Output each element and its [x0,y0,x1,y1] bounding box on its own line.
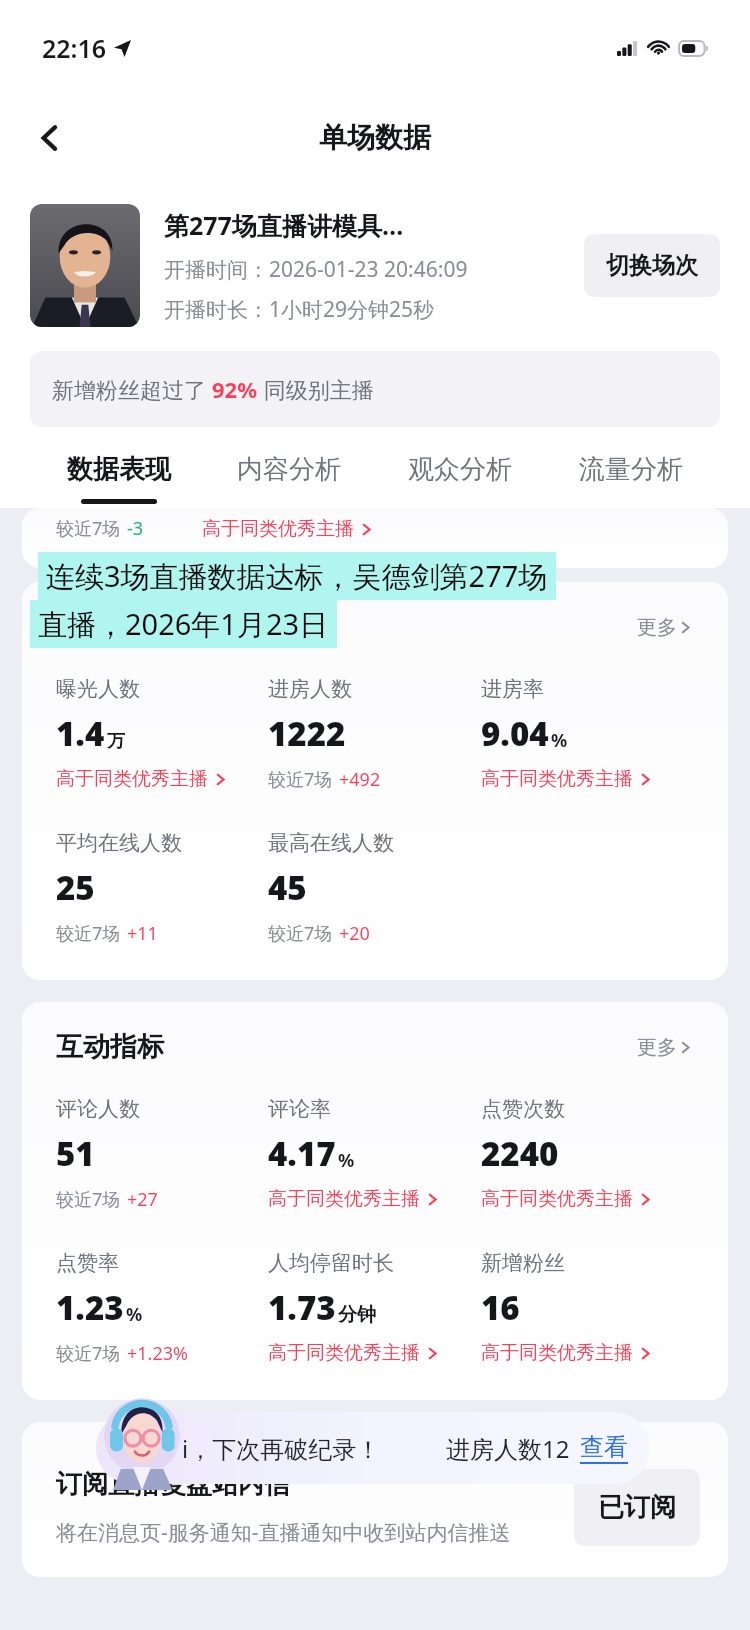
button[interactable]: 点赞率 [56,1250,268,1366]
staticText: +20 [339,921,370,946]
staticText: 更多 [637,1035,677,1060]
staticText: % [338,1148,355,1173]
staticText: 进房人数 [268,676,352,702]
staticText: 2240 [481,1131,559,1176]
button[interactable]: 点赞次数 [481,1096,694,1211]
button[interactable]: 评论率 [268,1096,481,1211]
staticText: +11 [127,921,158,946]
button[interactable]: 新增粉丝 [481,1250,694,1365]
staticText: 流量指标 [56,610,164,644]
staticText: 高于同类优秀主播 [481,767,633,791]
button[interactable]: 流量分析 [545,453,716,504]
staticText: 曝光人数 [56,676,140,702]
staticText: 开播时长：1小时29分钟25秒 [164,295,435,324]
staticText: 第277场直播讲模具… [164,208,404,242]
staticText: +1.23% [127,1341,188,1366]
button[interactable]: 新增粉丝超过了 [30,351,720,427]
staticText: 高于同类优秀主播 [481,1187,633,1211]
staticText: 查看 [580,1432,628,1462]
button[interactable]: Back [22,110,78,166]
button[interactable]: 人均停留时长 [268,1250,481,1365]
staticText: 直播，2026年1月23日 [38,604,329,644]
staticText: 观众分析 [408,453,512,486]
button[interactable]: 内容分析 [204,453,374,504]
staticText: 人均停留时长 [268,1250,394,1276]
staticText: % [126,1302,143,1327]
staticText: 9.04 [481,711,549,756]
staticText: 4.17 [268,1131,336,1176]
button[interactable]: 高于同类优秀主播 [202,517,375,541]
button[interactable]: 更多 [637,1035,694,1060]
staticText: 16 [481,1285,520,1330]
staticText: 同级别主播 [258,374,374,404]
button[interactable]: 曝光人数 [56,676,268,791]
staticText: 更多 [637,615,677,640]
staticText: 1.4 [56,711,105,756]
button[interactable]: 进房率 [481,676,694,791]
staticText: i，下次再破纪录！ [182,1432,381,1465]
staticText: 将在消息页-服务通知-直播通知中收到站内信推送 [56,1518,511,1547]
staticText: 22:16 [42,31,107,65]
staticText: 较近7场 [56,1187,121,1212]
staticText: 51 [56,1131,95,1176]
button[interactable]: 切换场次 [584,234,720,297]
staticText: 92% [212,374,258,404]
button[interactable]: 进房人数 [268,676,481,792]
staticText: 较近7场 [56,921,121,946]
staticText: 已订阅 [598,1491,676,1524]
staticText: 高于同类优秀主播 [481,1341,633,1365]
staticText: 高于同类优秀主播 [56,767,208,791]
staticText: 高于同类优秀主播 [268,1187,420,1211]
staticText: 开播时间：2026-01-23 20:46:09 [164,255,468,284]
button[interactable]: 观众分析 [374,453,545,504]
staticText: 切换场次 [606,251,698,280]
staticText: +492 [339,767,381,792]
button[interactable]: 最高在线人数 [268,830,481,946]
staticText: 万 [107,730,125,753]
staticText: +27 [127,1187,158,1212]
staticText: 连续3场直播数据达标，吴德剑第277场 [46,556,548,596]
staticText: 点赞率 [56,1250,119,1276]
button[interactable]: 平均在线人数 [56,830,268,946]
staticText: 平均在线人数 [56,830,182,856]
staticText: -3 [127,516,144,541]
staticText: 较近7场 [56,516,121,541]
staticText: 高于同类优秀主播 [202,517,354,541]
button[interactable]: i，下次再破纪录！ [96,1412,650,1484]
staticText: 互动指标 [56,1030,164,1064]
staticText: 评论率 [268,1096,331,1122]
staticText: 1222 [268,711,346,756]
button[interactable]: 更多 [637,615,694,640]
staticText: 较近7场 [268,921,333,946]
staticText: 评论人数 [56,1096,140,1122]
staticText: 单场数据 [319,120,431,155]
button[interactable]: 已订阅 [574,1469,700,1546]
staticText: 45 [268,865,307,910]
staticText: 高于同类优秀主播 [268,1341,420,1365]
staticText: 1.23 [56,1285,124,1330]
staticText: 新增粉丝 [481,1250,565,1276]
staticText: 新增粉丝超过了 [52,374,212,404]
staticText: 数据表现 [67,453,171,486]
staticText: 进房人数12 [446,1432,570,1465]
staticText: 较近7场 [268,767,333,792]
staticText: 订阅直播复盘站内信 [56,1468,290,1501]
staticText: 内容分析 [237,453,341,486]
button[interactable]: 评论人数 [56,1096,268,1212]
staticText: 最高在线人数 [268,830,394,856]
staticText: 流量分析 [579,453,683,486]
staticText: 点赞次数 [481,1096,565,1122]
staticText: 25 [56,865,95,910]
button[interactable]: 数据表现 [34,453,204,504]
staticText: 较近7场 [56,1341,121,1366]
staticText: 1.73 [268,1285,336,1330]
staticText: % [551,728,568,753]
staticText: 分钟 [338,1303,376,1327]
staticText: 进房率 [481,676,544,702]
